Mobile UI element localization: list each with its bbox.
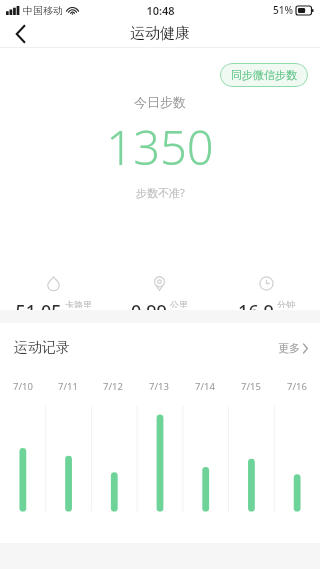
staticText: 更多 bbox=[278, 341, 300, 355]
staticText: 同步微信步数 bbox=[231, 68, 297, 82]
staticText: 7/16 bbox=[287, 380, 307, 393]
staticText: 中国移动 bbox=[23, 4, 63, 17]
button[interactable]: 51.05 bbox=[0, 276, 106, 310]
staticText: 今日步数 bbox=[134, 94, 186, 110]
staticText: 16.9 bbox=[238, 299, 274, 310]
button[interactable]: 16.9 bbox=[213, 276, 320, 310]
button[interactable]: 0.99 bbox=[106, 276, 213, 310]
staticText: 51% bbox=[273, 3, 293, 17]
button[interactable]: 同步微信步数 bbox=[220, 63, 308, 87]
button[interactable]: 步数不准? bbox=[136, 185, 185, 200]
staticText: 7/14 bbox=[195, 380, 215, 393]
staticText: 7/15 bbox=[241, 380, 261, 393]
staticText: 步数不准? bbox=[136, 185, 185, 200]
button[interactable]: 更多 bbox=[278, 341, 308, 355]
staticText: 分钟 bbox=[277, 299, 295, 308]
staticText: 0.99 bbox=[131, 299, 167, 310]
button[interactable]: Back bbox=[0, 20, 40, 47]
staticText: 51.05 bbox=[15, 299, 62, 310]
staticText: 7/13 bbox=[149, 380, 169, 393]
staticText: 7/11 bbox=[58, 380, 78, 393]
staticText: 7/10 bbox=[13, 380, 33, 393]
staticText: 公里 bbox=[170, 299, 188, 308]
staticText: 10:48 bbox=[146, 3, 175, 18]
staticText: 1350 bbox=[106, 115, 214, 179]
staticText: 卡路里 bbox=[65, 299, 92, 308]
staticText: 7/12 bbox=[103, 380, 123, 393]
staticText: 运动健康 bbox=[130, 24, 190, 43]
staticText: 运动记录 bbox=[14, 339, 70, 357]
